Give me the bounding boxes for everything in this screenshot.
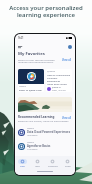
staticText: How do I personalize customer experience… xyxy=(47,74,71,86)
staticText: Module xyxy=(27,141,34,144)
staticText: Question xyxy=(47,70,56,73)
button[interactable]: Module xyxy=(18,127,72,137)
button[interactable]: Today xyxy=(16,159,29,167)
staticText: Recommended Learning xyxy=(18,115,55,119)
staticText: Learn xyxy=(35,165,40,167)
staticText: Agentforce Basics xyxy=(27,144,51,148)
button[interactable]: Profile xyxy=(61,159,74,167)
button[interactable]: Learn xyxy=(31,159,44,167)
staticText: Today, 10:32 PM xyxy=(52,89,66,91)
staticText: +200 points xyxy=(27,134,38,137)
button[interactable]: Question xyxy=(46,69,72,92)
staticText: My Favorites xyxy=(18,51,45,57)
staticText: +100 points xyxy=(27,148,38,151)
button[interactable]: View all xyxy=(62,58,72,61)
staticText: Based on your activity, check out these … xyxy=(18,120,69,123)
staticText: Today xyxy=(20,165,25,167)
staticText: Profile xyxy=(65,165,71,167)
staticText: Module xyxy=(27,127,34,130)
staticText: Module xyxy=(19,85,26,88)
button[interactable]: View all xyxy=(62,116,72,119)
staticText: 9:41 xyxy=(18,36,24,40)
button[interactable]: Module xyxy=(18,141,72,151)
staticText: Flash AI Quick Look xyxy=(19,88,42,91)
staticText: Data Cloud Powered Experiences xyxy=(27,130,70,134)
button[interactable]: Module xyxy=(18,69,44,92)
button[interactable]: Profile xyxy=(68,45,72,49)
staticText: Return to your favorite Trailhead module… xyxy=(18,58,60,64)
staticText: Community xyxy=(48,165,58,167)
staticText: Access your personalized learning experi… xyxy=(0,4,92,19)
button[interactable]: Community xyxy=(46,159,59,167)
button[interactable]: Menu xyxy=(18,45,23,49)
staticText: Jessica Yu xyxy=(52,86,61,89)
